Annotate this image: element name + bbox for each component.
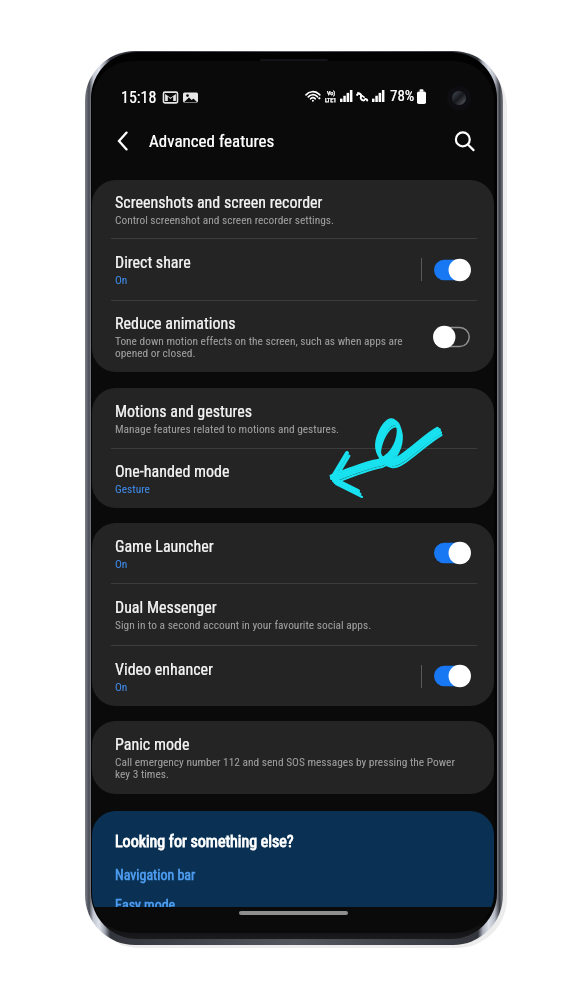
staticText: Video enhancer [115, 660, 213, 679]
staticText: Tone down motion effects on the screen, … [115, 334, 410, 360]
button[interactable]: Easy mode [115, 897, 176, 907]
staticText: Call emergency number 112 and send SOS m… [115, 755, 464, 781]
button[interactable]: Dual Messenger [92, 584, 494, 645]
button[interactable]: Navigation bar [115, 867, 196, 883]
staticText: Panic mode [115, 735, 190, 754]
staticText: On [115, 557, 128, 570]
button[interactable]: Screenshots and screen recorder [92, 180, 494, 238]
staticText: Direct share [115, 253, 191, 272]
staticText: One-handed mode [115, 462, 230, 481]
button[interactable]: Direct share [92, 239, 494, 300]
staticText: On [115, 273, 128, 286]
button[interactable]: Search [442, 119, 486, 163]
staticText: On [115, 680, 128, 693]
button[interactable]: Turn off [434, 258, 470, 282]
staticText: 15:18 [121, 88, 157, 107]
staticText: Sign in to a second account in your favo… [115, 618, 372, 631]
staticText: 78% [390, 87, 415, 105]
staticText: Gesture [115, 482, 150, 495]
staticText: Vo) [327, 89, 336, 96]
staticText: Screenshots and screen recorder [115, 193, 323, 212]
button[interactable]: Reduce animations [92, 301, 494, 372]
staticText: Game Launcher [115, 537, 214, 556]
button[interactable]: Turn on [434, 325, 470, 349]
button[interactable]: Turn off [434, 541, 470, 565]
staticText: Motions and gestures [115, 402, 252, 421]
button[interactable]: Game Launcher [92, 523, 494, 583]
staticText: Reduce animations [115, 314, 236, 333]
button[interactable]: Looking for something else? [92, 811, 494, 907]
button[interactable]: Video enhancer [92, 646, 494, 706]
staticText: Dual Messenger [115, 598, 217, 617]
button[interactable]: Motions and gestures [92, 388, 494, 448]
staticText: Control screenshot and screen recorder s… [115, 213, 334, 226]
staticText: Manage features related to motions and g… [115, 422, 340, 435]
staticText: Looking for something else? [115, 832, 294, 851]
button[interactable]: Turn off [434, 664, 470, 688]
staticText: LTE1 [325, 96, 337, 103]
button[interactable]: Panic mode [92, 721, 494, 794]
button[interactable]: Navigate up [103, 121, 143, 161]
button[interactable]: One-handed mode [92, 449, 494, 508]
staticText: Advanced features [149, 131, 275, 151]
